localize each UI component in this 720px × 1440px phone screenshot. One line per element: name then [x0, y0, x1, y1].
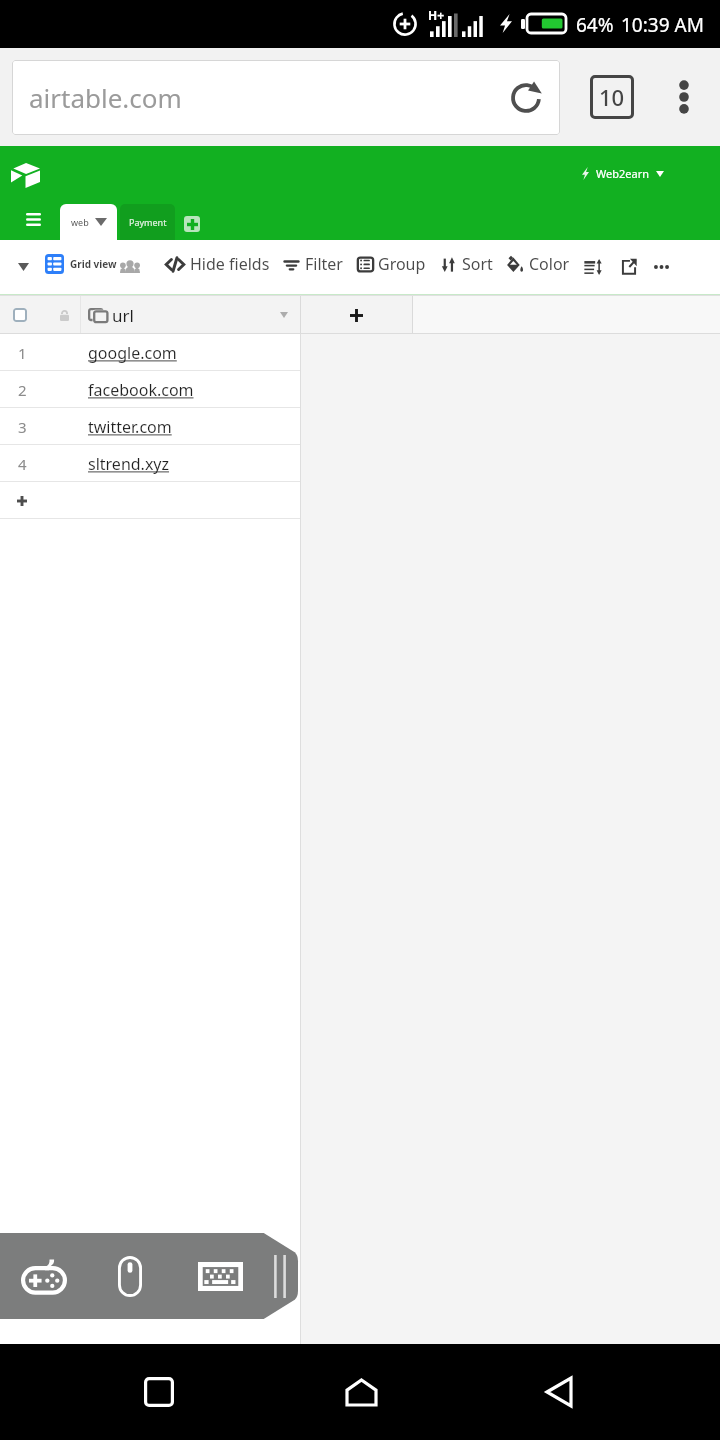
button[interactable]: Payment [120, 204, 175, 240]
staticText: Hide fields [190, 253, 270, 275]
staticText: twitter.com [88, 416, 172, 438]
button[interactable]: Mouse [106, 1247, 154, 1305]
staticText: google.com [88, 342, 177, 364]
button[interactable]: 4 [0, 445, 300, 482]
button[interactable]: Add table [184, 216, 200, 232]
staticText: url [112, 304, 134, 327]
button[interactable]: Back [511, 1344, 607, 1440]
button[interactable]: Hide fields [165, 253, 270, 275]
button[interactable]: Sort [441, 253, 493, 275]
button[interactable]: Row height [580, 245, 606, 289]
button[interactable]: Add record [0, 482, 300, 519]
staticText: facebook.com [88, 379, 194, 401]
staticText: sltrend.xyz [88, 453, 170, 475]
button[interactable]: Reload [500, 72, 552, 124]
button[interactable]: url [0, 296, 300, 334]
button[interactable]: web [60, 204, 117, 240]
staticText: 3 [18, 417, 27, 437]
staticText: web [71, 216, 89, 228]
button[interactable]: Gamepad [12, 1247, 76, 1305]
staticText: 2 [18, 380, 27, 400]
staticText: 1 [18, 343, 27, 363]
staticText: Group [378, 253, 426, 275]
staticText: H+ [428, 7, 445, 23]
button[interactable]: 1 [0, 334, 300, 371]
button[interactable]: Keyboard [194, 1247, 246, 1305]
button[interactable]: Grid view [45, 254, 117, 274]
button[interactable]: Filter [283, 253, 343, 275]
button[interactable]: Views [10, 245, 36, 289]
button[interactable]: More options [658, 71, 710, 123]
button[interactable]: 2 [0, 371, 300, 408]
button[interactable]: Web2earn [582, 166, 664, 181]
staticText: Payment [129, 216, 167, 228]
button[interactable]: Drag handle [264, 1247, 296, 1305]
staticText: 10 [599, 82, 625, 112]
staticText: Grid view [70, 257, 117, 271]
button[interactable]: Menu [11, 198, 55, 240]
button[interactable]: Color [506, 253, 570, 275]
staticText: Sort [462, 253, 493, 275]
button[interactable]: airtable.com [12, 60, 560, 135]
staticText: 10:39 AM [621, 12, 704, 38]
button[interactable]: Recents [111, 1344, 207, 1440]
button[interactable]: More [648, 245, 674, 289]
staticText: 4 [18, 454, 27, 474]
button[interactable]: Share view [616, 245, 642, 289]
button[interactable]: Collaborators [117, 245, 143, 289]
staticText: Filter [305, 253, 343, 275]
button[interactable]: 3 [0, 408, 300, 445]
button[interactable]: Add field [301, 296, 412, 334]
staticText: airtable.com [29, 80, 182, 115]
staticText: 64% [576, 12, 614, 38]
staticText: Web2earn [596, 166, 649, 181]
staticText: Color [529, 253, 570, 275]
button[interactable]: Tabs [586, 71, 638, 123]
button[interactable]: Home [313, 1344, 409, 1440]
button[interactable]: Group [357, 253, 426, 275]
